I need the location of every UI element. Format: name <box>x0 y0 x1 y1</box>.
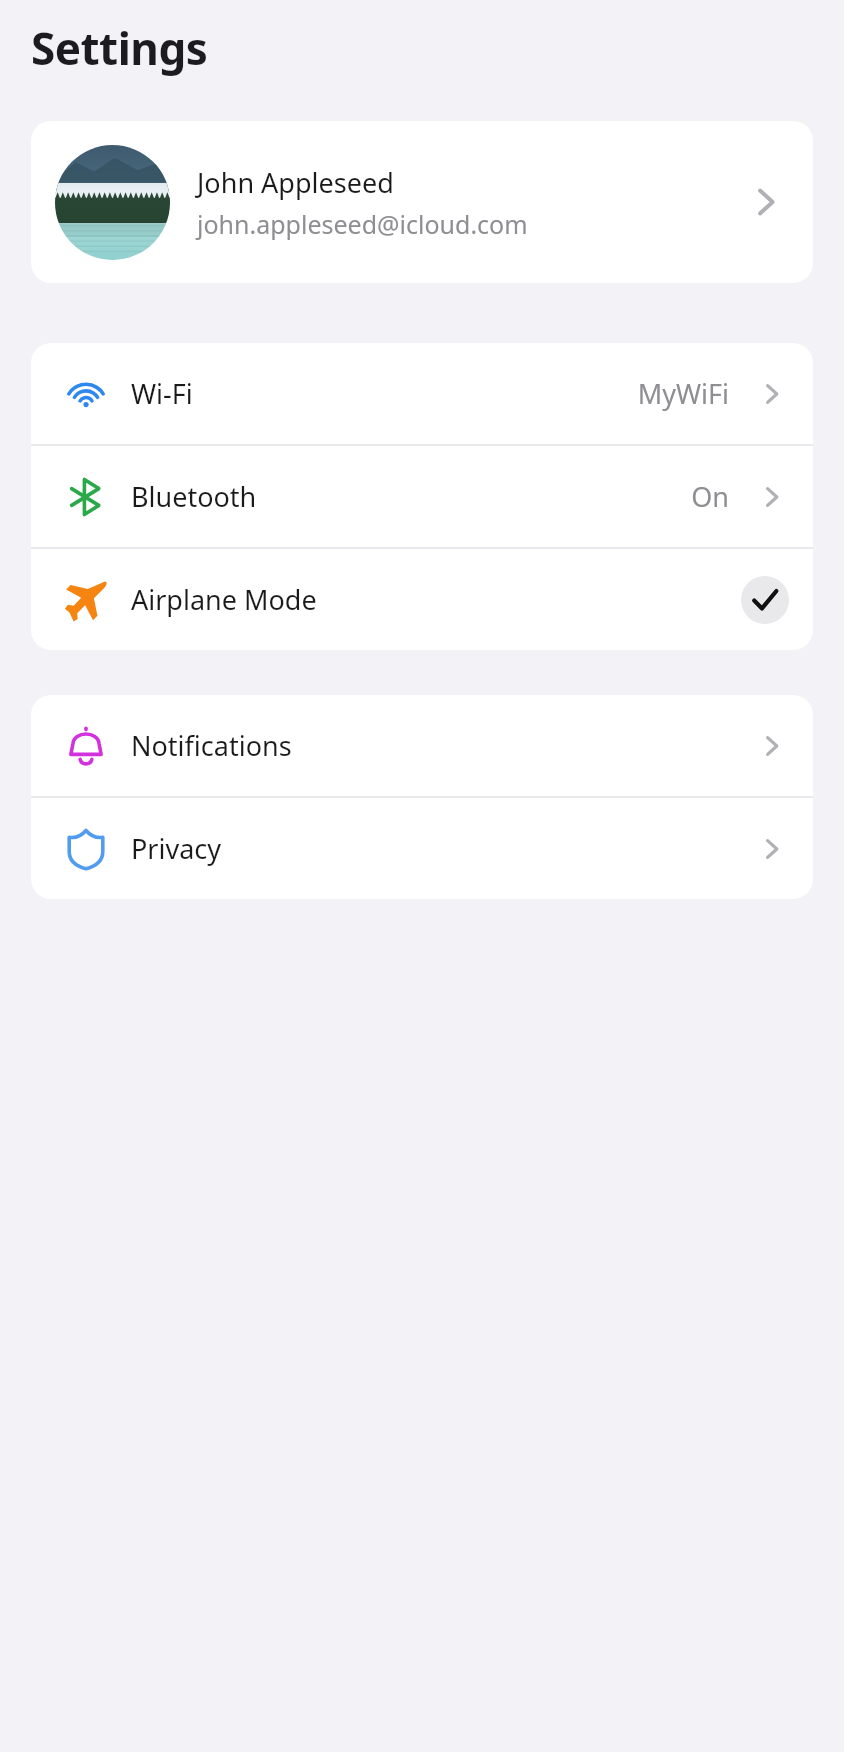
staticText: On <box>691 478 729 515</box>
staticText: Privacy <box>131 830 222 867</box>
button[interactable]: Bluetooth <box>31 446 813 547</box>
staticText: MyWiFi <box>637 375 729 412</box>
other: Profile photo <box>55 145 170 260</box>
staticText: Notifications <box>131 727 292 764</box>
button[interactable]: Airplane Mode <box>31 549 813 650</box>
button[interactable]: Notifications <box>31 695 813 796</box>
button[interactable]: Wi-Fi <box>31 343 813 444</box>
staticText: john.appleseed@icloud.com <box>197 207 528 241</box>
staticText: Settings <box>31 18 208 78</box>
button[interactable]: Profile photo <box>31 121 813 283</box>
staticText: Wi-Fi <box>131 375 193 412</box>
button[interactable]: Privacy <box>31 798 813 899</box>
staticText: Airplane Mode <box>131 581 317 618</box>
staticText: Bluetooth <box>131 478 257 515</box>
button[interactable]: Airplane Mode enabled <box>741 576 789 624</box>
staticText: John Appleseed <box>197 164 394 201</box>
